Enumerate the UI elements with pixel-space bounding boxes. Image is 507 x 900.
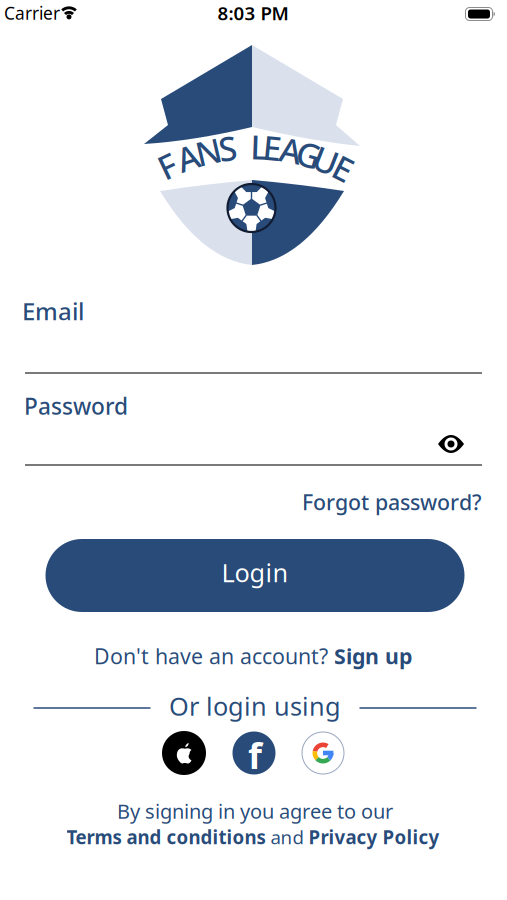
staticText: Terms and conditions	[66, 825, 265, 849]
staticText: U	[313, 138, 338, 182]
staticText: F	[158, 144, 176, 188]
staticText: 8:03 PM	[217, 1, 288, 25]
staticText: Password	[24, 391, 128, 421]
staticText: Sign up	[334, 642, 412, 670]
staticText: Or login using	[169, 689, 341, 723]
staticText: N	[195, 129, 221, 174]
staticText: f	[248, 731, 262, 779]
staticText: L	[250, 124, 268, 169]
button[interactable]: Show password	[436, 432, 466, 456]
staticText: E	[263, 125, 282, 170]
staticText: Privacy Policy	[308, 825, 439, 849]
staticText: Email	[22, 295, 84, 327]
staticText: A	[177, 135, 199, 179]
button[interactable]: Sign in with Facebook	[232, 729, 275, 777]
button[interactable]: Sign up	[334, 642, 412, 670]
staticText: Login	[221, 556, 288, 589]
staticText: Carrier	[4, 1, 60, 24]
button[interactable]: Login	[45, 539, 464, 612]
staticText: Forgot password?	[302, 488, 482, 516]
staticText: E	[334, 146, 353, 190]
staticText: A	[280, 128, 302, 172]
staticText: and	[270, 825, 303, 849]
button[interactable]: Sign in with Google	[302, 732, 344, 774]
staticText: Don't have an account?	[94, 642, 328, 670]
button[interactable]: Forgot password?	[302, 488, 482, 516]
button[interactable]: Sign in with Apple	[162, 731, 206, 775]
staticText: G	[296, 132, 320, 176]
button[interactable]: Privacy Policy	[308, 825, 439, 849]
staticText: By signing in you agree to our	[117, 798, 393, 824]
staticText: S	[218, 126, 236, 170]
button[interactable]: Terms and conditions	[66, 825, 265, 849]
